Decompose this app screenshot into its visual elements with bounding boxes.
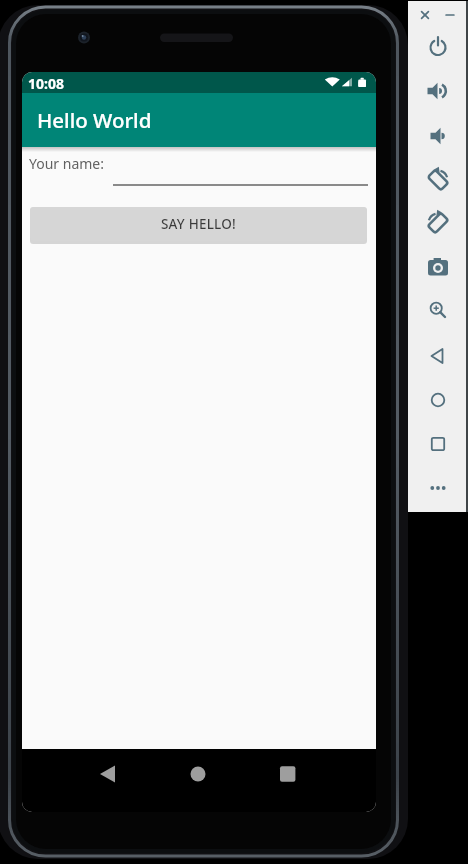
button[interactable] <box>420 73 456 109</box>
button[interactable] <box>420 292 456 328</box>
staticText: Hello World <box>37 106 152 134</box>
button[interactable] <box>420 426 456 462</box>
button[interactable] <box>176 752 220 796</box>
staticText: SAY HELLO! <box>161 215 236 233</box>
button[interactable] <box>420 338 456 374</box>
button[interactable] <box>266 752 310 796</box>
button[interactable] <box>420 29 456 65</box>
button[interactable] <box>420 205 456 241</box>
button[interactable] <box>113 162 368 186</box>
staticText: 10:08 <box>28 74 64 93</box>
button[interactable] <box>420 118 456 154</box>
button[interactable] <box>420 162 456 198</box>
button[interactable] <box>407 0 443 33</box>
staticText: Your name: <box>29 154 105 173</box>
button[interactable] <box>432 0 468 33</box>
button[interactable] <box>420 470 456 506</box>
button[interactable]: SAY HELLO! <box>30 207 367 241</box>
button[interactable] <box>420 248 456 284</box>
button[interactable] <box>80 752 124 796</box>
button[interactable] <box>420 382 456 418</box>
